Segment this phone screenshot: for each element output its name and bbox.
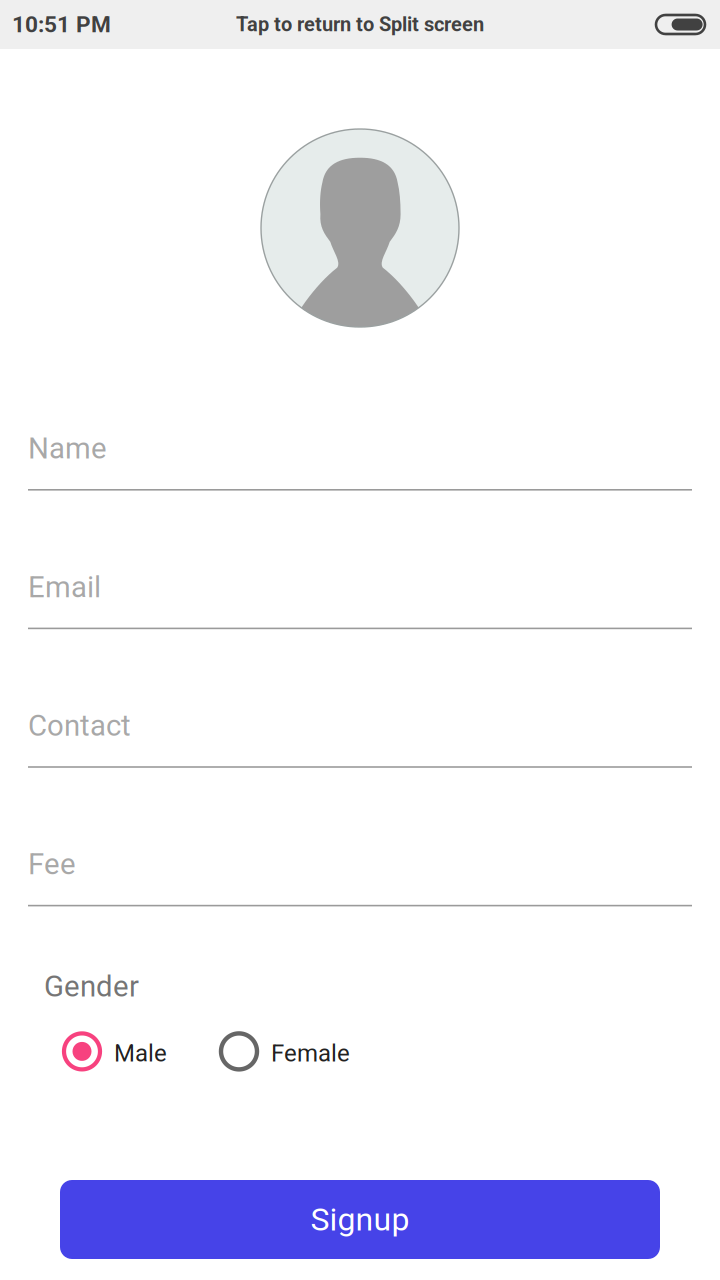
button[interactable]: Male: [62, 1031, 167, 1071]
button[interactable]: Signup: [60, 1180, 660, 1259]
button[interactable]: Female: [219, 1031, 350, 1071]
button[interactable]: Name: [28, 426, 692, 491]
staticText: Email: [28, 570, 101, 604]
staticText: 10:51 PM: [12, 11, 111, 38]
button[interactable]: Contact: [28, 703, 692, 768]
staticText: Name: [28, 431, 107, 466]
staticText: Fee: [28, 847, 76, 881]
button[interactable]: Choose profile photo: [261, 129, 459, 327]
staticText: Contact: [28, 708, 131, 743]
staticText: Male: [114, 1039, 167, 1067]
staticText: Tap to return to Split screen: [236, 13, 484, 36]
button[interactable]: Fee: [28, 842, 692, 906]
staticText: Female: [271, 1039, 350, 1067]
staticText: Signup: [310, 1201, 409, 1238]
staticText: Gender: [44, 969, 139, 1004]
button[interactable]: Email: [28, 565, 692, 629]
